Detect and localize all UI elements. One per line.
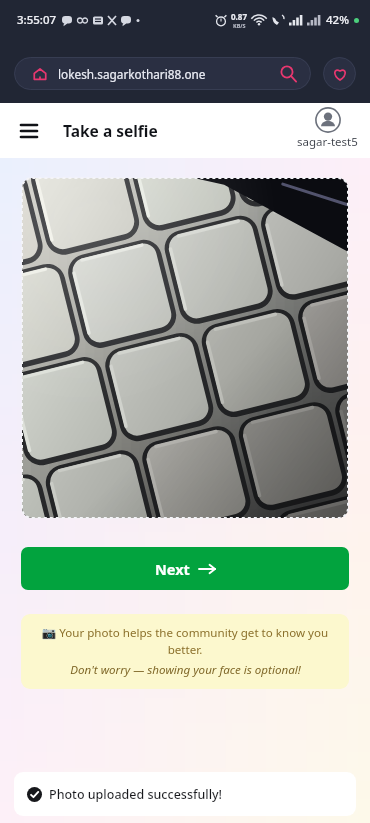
staticText: KB/S: [233, 22, 246, 29]
staticText: 📷 Your photo helps the community get to …: [33, 625, 337, 658]
staticText: 0.87: [231, 11, 247, 22]
staticText: Next: [155, 559, 190, 579]
staticText: 3:55:07: [17, 12, 57, 28]
button[interactable]: Favourites: [323, 57, 356, 90]
staticText: Photo uploaded successfully!: [49, 786, 223, 803]
staticText: sagar-test5: [297, 134, 358, 150]
staticText: Take a selfie: [63, 120, 158, 141]
staticText: lokesh.sagarkothari88.one: [58, 66, 206, 82]
other: Search: [280, 65, 297, 82]
button[interactable]: Menu: [14, 116, 44, 146]
button[interactable]: Photo uploaded successfully!: [14, 772, 356, 816]
button[interactable]: Next: [21, 547, 349, 590]
staticText: 42%: [326, 12, 349, 28]
button[interactable]: sagar-test5: [297, 107, 358, 150]
button[interactable]: lokesh.sagarkothari88.one: [14, 57, 311, 90]
staticText: Don't worry — showing your face is optio…: [70, 662, 301, 678]
